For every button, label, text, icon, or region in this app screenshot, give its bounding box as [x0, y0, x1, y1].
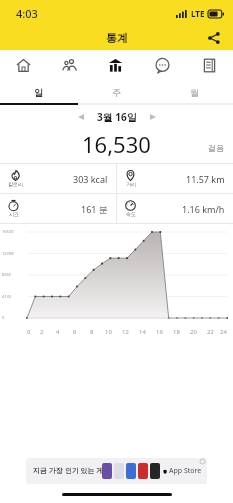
button[interactable]: Share: [203, 27, 225, 49]
staticText: 24: [220, 328, 227, 336]
staticText: 통계: [106, 31, 128, 45]
button[interactable]: 지금 가장 인기 있는 게임: [26, 458, 207, 484]
staticText: 일: [34, 87, 43, 98]
staticText: 20: [190, 328, 197, 336]
staticText: 속도: [126, 211, 136, 217]
button[interactable]: Chat: [139, 50, 186, 81]
staticText: 12: [122, 328, 129, 336]
staticText: 2: [40, 328, 44, 336]
staticText: 303 kcal: [73, 173, 108, 185]
staticText: 6: [73, 328, 77, 336]
staticText: 3월 16일: [97, 110, 137, 124]
button[interactable]: Friends: [46, 50, 92, 81]
staticText: 16: [156, 328, 163, 336]
staticText: 12398: [2, 251, 14, 256]
staticText: 16,530: [82, 129, 151, 157]
button[interactable]: Previous day: [73, 109, 89, 125]
staticText: 칼로리: [8, 181, 23, 187]
staticText: 18: [173, 328, 180, 336]
button[interactable]: 거리: [117, 164, 233, 193]
staticText: 0: [2, 315, 5, 320]
staticText: 16530: [2, 229, 14, 234]
staticText: 14: [139, 328, 146, 336]
staticText: 월: [190, 87, 199, 98]
staticText: 4:03: [16, 6, 38, 21]
staticText: 1.16 km/h: [182, 203, 225, 215]
staticText: 시간: [9, 211, 19, 217]
staticText: 11.57 km: [186, 173, 225, 185]
button[interactable]: Home: [0, 50, 46, 81]
button[interactable]: 칼로리: [0, 164, 116, 193]
staticText: LTE: [191, 8, 205, 19]
staticText: 10: [105, 328, 112, 336]
button[interactable]: 월: [155, 81, 233, 103]
staticText: 161 분: [81, 203, 108, 215]
staticText: App Store: [169, 466, 202, 476]
staticText: 지금 가장 인기 있는 게임: [33, 466, 111, 476]
staticText: 4133: [2, 294, 12, 299]
button[interactable]: Documents: [186, 50, 233, 81]
button[interactable]: 주: [77, 81, 155, 103]
staticText: 4: [56, 328, 60, 336]
staticText: 8265: [2, 272, 12, 277]
button[interactable]: Statistics: [92, 50, 139, 81]
staticText: 22: [207, 328, 214, 336]
staticText: 걸음: [208, 143, 224, 153]
staticText: 거리: [126, 181, 136, 187]
staticText: 주: [112, 87, 121, 98]
staticText: 0: [27, 328, 31, 336]
button[interactable]: 시간: [0, 194, 116, 223]
button[interactable]: 속도: [117, 194, 233, 223]
staticText: 8: [90, 328, 94, 336]
button[interactable]: Next day: [145, 109, 161, 125]
button[interactable]: 일: [0, 81, 77, 103]
